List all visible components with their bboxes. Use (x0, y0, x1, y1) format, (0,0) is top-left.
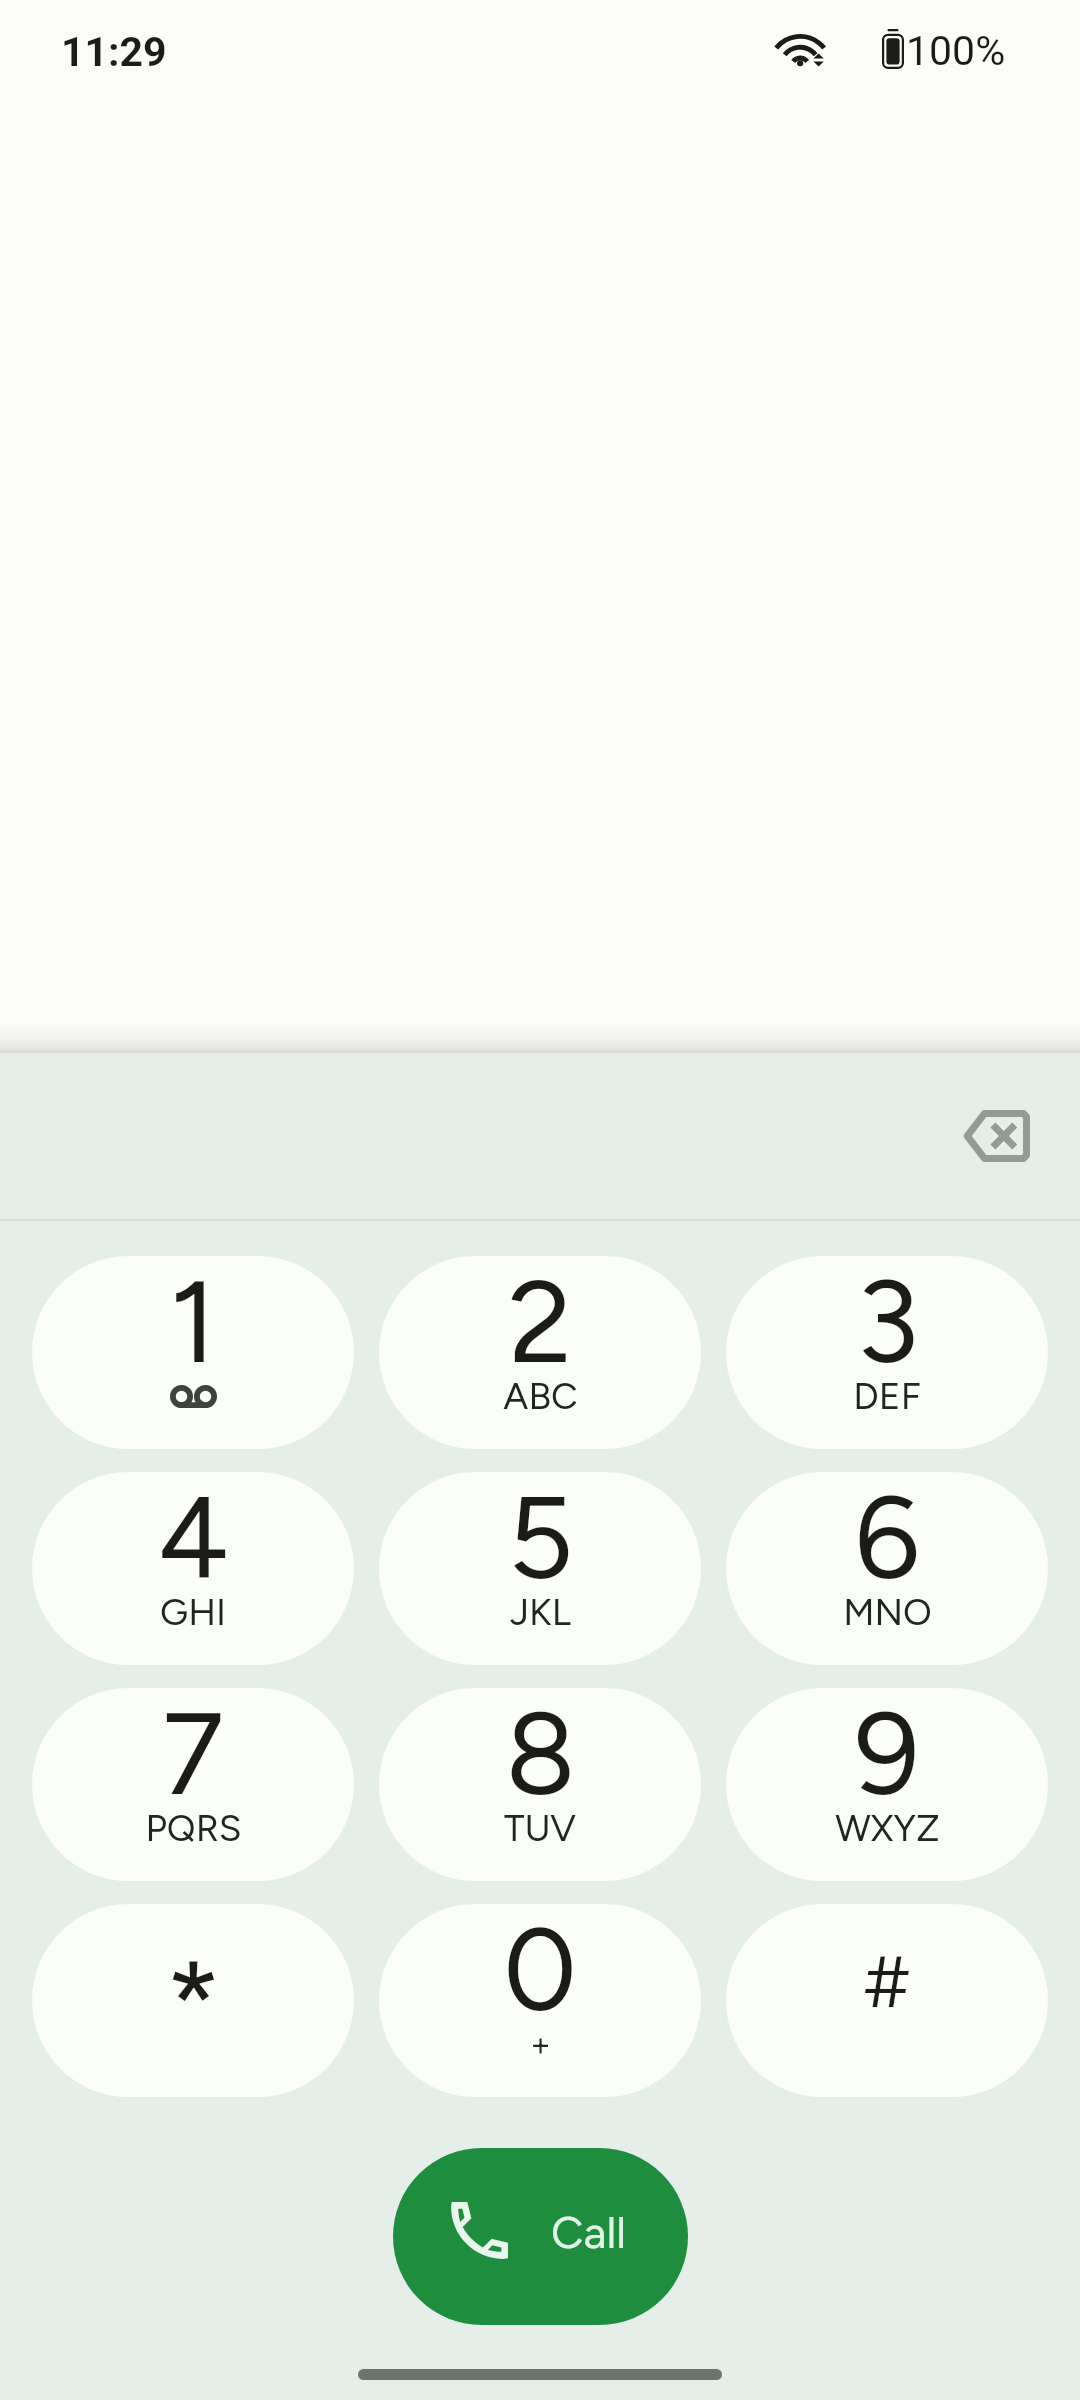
staticText: # (864, 1939, 910, 2025)
staticText: DEF (853, 1374, 921, 1418)
staticText: PQRS (145, 1806, 242, 1850)
button[interactable]: 0 (379, 1904, 701, 2097)
button[interactable]: 8 (379, 1688, 701, 1881)
staticText: 3 (856, 1256, 919, 1391)
button[interactable]: Call (393, 2148, 688, 2325)
button[interactable]: 6 (726, 1472, 1048, 1665)
staticText: WXYZ (835, 1806, 940, 1850)
button[interactable]: 3 (726, 1256, 1048, 1449)
staticText: 9 (854, 1688, 920, 1823)
button[interactable]: 2 (379, 1256, 701, 1449)
button[interactable]: 1 (32, 1256, 354, 1449)
staticText: MNO (843, 1590, 932, 1634)
button[interactable]: # (726, 1904, 1048, 2097)
staticText: 100% (906, 27, 1006, 75)
staticText: JKL (510, 1590, 571, 1634)
staticText: 0 (503, 1904, 577, 2039)
button[interactable]: 5 (379, 1472, 701, 1665)
staticText: 2 (508, 1256, 573, 1391)
staticText: TUV (504, 1806, 576, 1850)
staticText: 7 (162, 1688, 224, 1823)
staticText: 5 (507, 1472, 574, 1607)
button[interactable]: 9 (726, 1688, 1048, 1881)
staticText: 6 (854, 1472, 920, 1607)
staticText: * (165, 1935, 222, 2077)
staticText: Call (551, 2205, 627, 2259)
staticText: 1 (169, 1256, 217, 1391)
button[interactable]: 7 (32, 1688, 354, 1881)
staticText: GHI (160, 1590, 226, 1634)
button[interactable]: 4 (32, 1472, 354, 1665)
staticText: 8 (505, 1688, 576, 1823)
button[interactable]: Backspace (931, 1071, 1061, 1201)
staticText: ABC (503, 1374, 578, 1418)
staticText: 11:29 (61, 28, 167, 76)
staticText: 4 (157, 1472, 229, 1607)
staticText: + (530, 2025, 551, 2065)
button[interactable]: * (32, 1904, 354, 2097)
